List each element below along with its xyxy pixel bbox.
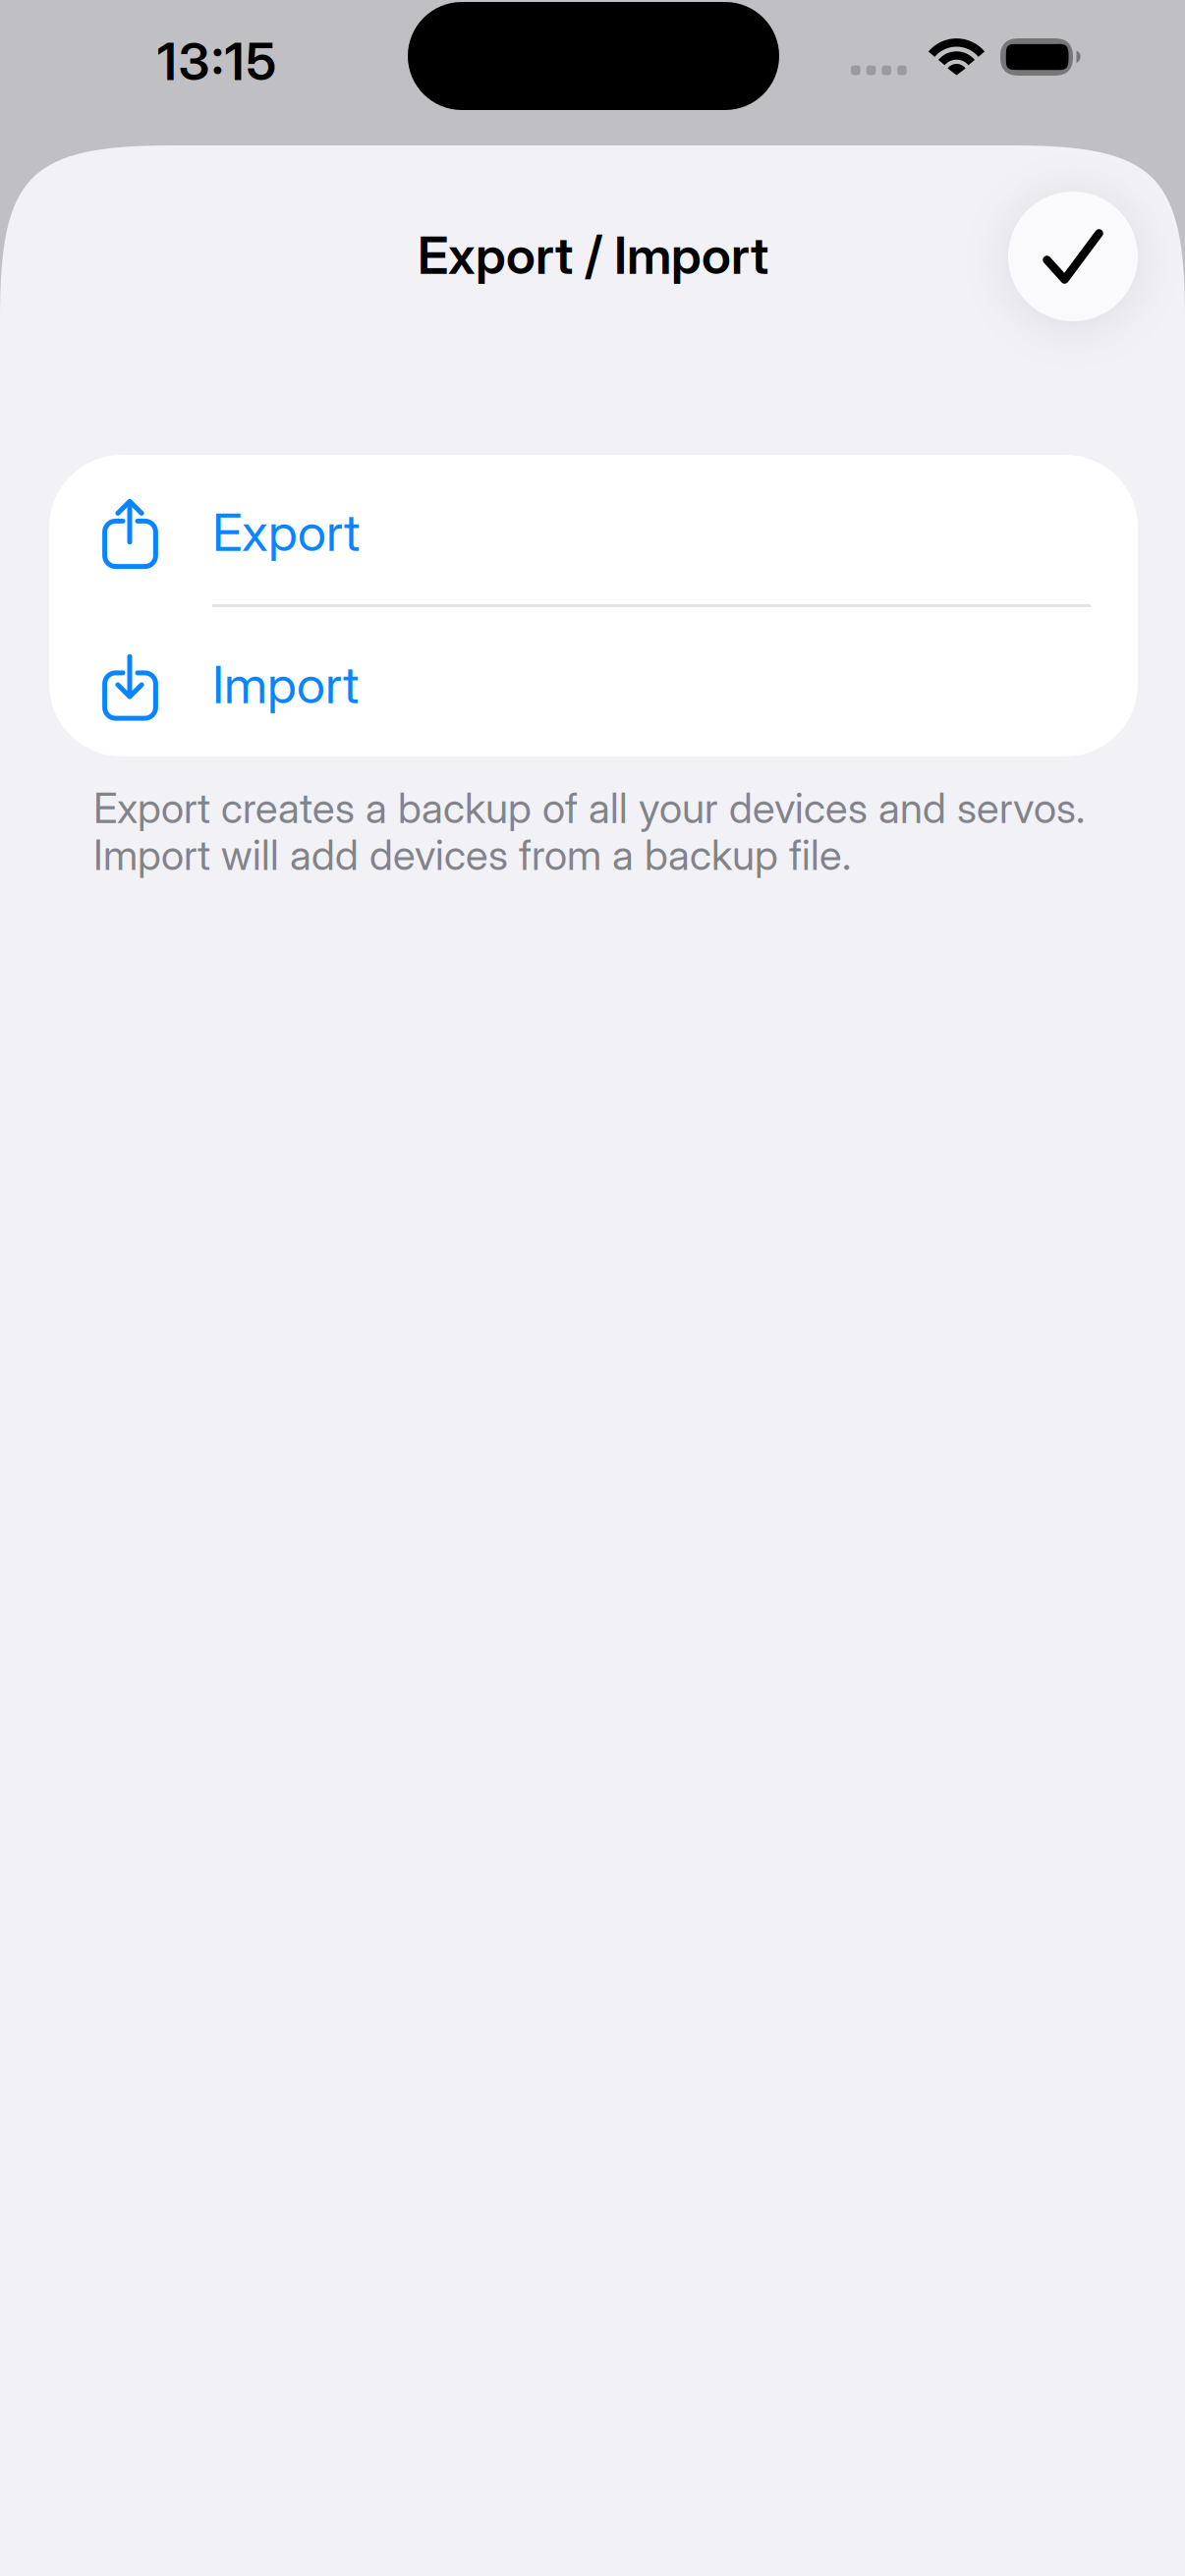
staticText: Import [212,653,359,716]
staticText: Export creates a backup of all your devi… [93,783,1085,880]
staticText: Export / Import [418,224,768,286]
staticText: 13:15 [157,30,276,92]
button[interactable]: Done [1008,192,1138,321]
button[interactable]: Export [49,455,1138,604]
button[interactable]: Import [49,607,1138,756]
staticText: Export [212,501,360,563]
